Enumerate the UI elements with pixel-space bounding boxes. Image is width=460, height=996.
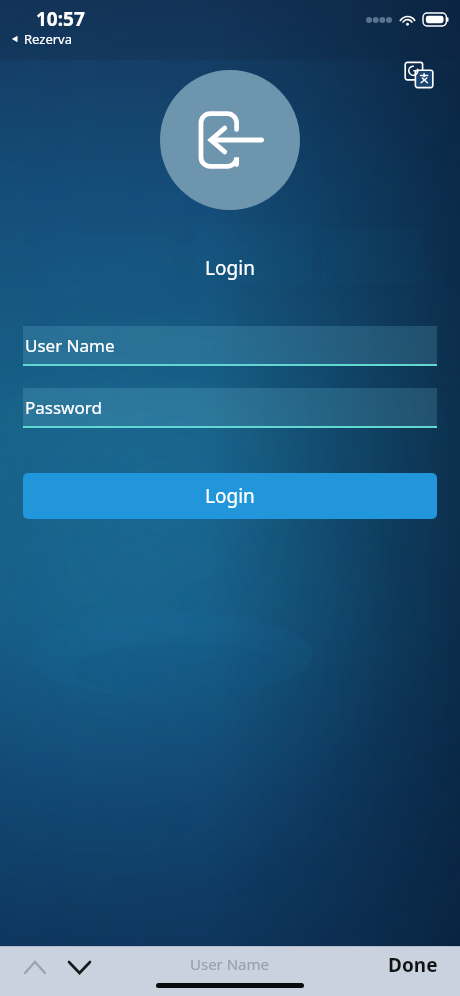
staticText: 10:57 — [36, 6, 85, 32]
staticText: Rezerva — [24, 30, 72, 48]
staticText: Login — [205, 483, 255, 509]
button[interactable]: User Name — [23, 326, 437, 364]
button[interactable]: Previous field — [18, 950, 52, 984]
staticText: Done — [388, 952, 438, 978]
staticText: Login — [0, 255, 460, 281]
staticText: Password — [25, 396, 102, 419]
button[interactable]: Password — [23, 388, 437, 426]
button[interactable]: Login — [23, 473, 437, 519]
staticText: User Name — [25, 334, 115, 357]
button[interactable]: Next field — [62, 950, 96, 984]
staticText: User Name — [190, 954, 270, 974]
button[interactable]: Done — [378, 946, 448, 984]
button[interactable]: Translate — [400, 56, 438, 94]
button[interactable]: Rezerva — [10, 30, 72, 48]
